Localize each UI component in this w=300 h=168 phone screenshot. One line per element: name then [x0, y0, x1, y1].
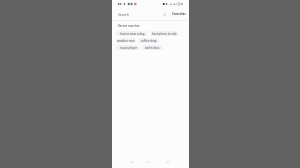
staticText: how to train a dog: [120, 32, 145, 36]
button[interactable]: how to train a dog: [116, 31, 148, 36]
staticText: music player: [120, 46, 137, 50]
button[interactable]: kotlin docs: [142, 45, 163, 50]
staticText: Recent searches: [118, 24, 140, 28]
staticText: kotlin docs: [145, 46, 160, 50]
button[interactable]: music player: [116, 45, 140, 50]
button[interactable]: best places to visit: [150, 31, 178, 36]
button[interactable]: weather now: [116, 38, 136, 43]
button[interactable]: Recents: [143, 159, 153, 168]
staticText: best places to visit: [152, 32, 177, 36]
staticText: weather now: [117, 39, 135, 43]
button[interactable]: Back: [162, 159, 172, 168]
button[interactable]: Home: [127, 159, 137, 168]
button[interactable]: Clear: [161, 11, 168, 18]
button[interactable]: Cancelar: [172, 12, 186, 16]
staticText: coffee shop: [141, 39, 157, 43]
staticText: Search: [118, 12, 129, 17]
button[interactable]: coffee shop: [138, 38, 159, 43]
